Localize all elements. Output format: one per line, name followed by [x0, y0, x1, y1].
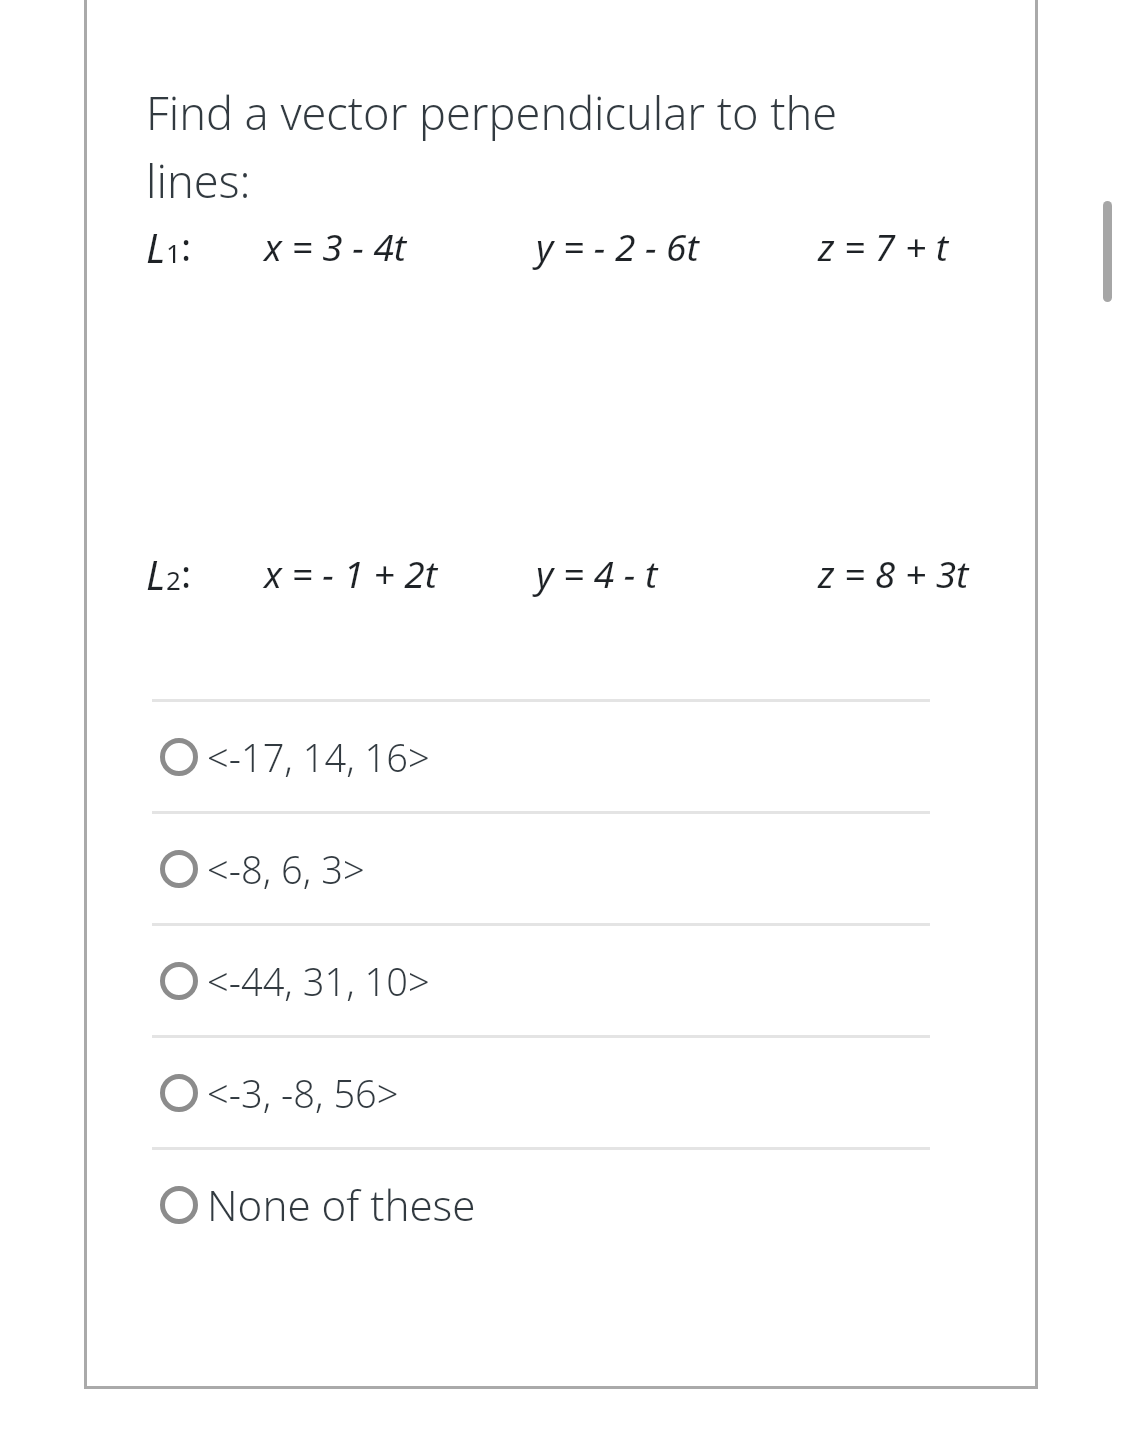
staticText: <-8, 6, 3> — [207, 843, 365, 895]
staticText: 1 — [166, 235, 181, 270]
button[interactable]: None of these — [146, 1150, 986, 1259]
staticText: : — [181, 547, 192, 599]
staticText: Find a vector perpendicular to the lines… — [146, 82, 838, 212]
button[interactable]: <-3, -8, 56> — [146, 1038, 986, 1147]
other: Scroll position indicator — [1103, 201, 1112, 302]
staticText: x = − 1 + 2t — [264, 548, 437, 598]
staticText: y = − 2 − 6t — [536, 221, 699, 271]
staticText: y = 4 − t — [536, 548, 658, 598]
staticText: L — [146, 220, 166, 272]
button[interactable]: <-44, 31, 10> — [146, 926, 986, 1035]
button[interactable]: <-17, 14, 16> — [146, 702, 986, 811]
staticText: 2 — [166, 562, 181, 597]
staticText: L — [146, 547, 166, 599]
staticText: z = 7 + t — [818, 221, 948, 271]
staticText: : — [181, 220, 192, 272]
button[interactable]: <-8, 6, 3> — [146, 814, 986, 923]
staticText: z = 8 + 3t — [818, 548, 969, 598]
staticText: <-3, -8, 56> — [207, 1067, 399, 1119]
staticText: <-44, 31, 10> — [207, 955, 430, 1007]
staticText: x = 3 − 4t — [264, 221, 407, 271]
staticText: <-17, 14, 16> — [207, 731, 430, 783]
staticText: None of these — [207, 1176, 476, 1233]
